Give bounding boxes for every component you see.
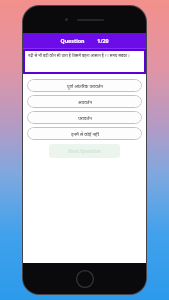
staticText: परावर्तन	[78, 115, 92, 121]
button[interactable]: Question	[23, 33, 146, 48]
staticText: Question	[60, 37, 85, 44]
staticText: पूर्ण आंतरिक परावर्तन	[67, 83, 103, 89]
button[interactable]: Next Question	[49, 144, 120, 158]
button[interactable]: परावर्तन	[27, 111, 142, 124]
button[interactable]: इनमें से कोई नहीं	[27, 127, 142, 140]
staticText: 1/20	[97, 37, 109, 44]
button[interactable]: Home	[76, 270, 94, 288]
staticText: अपवर्तन	[78, 99, 92, 105]
button[interactable]: पूर्ण आंतरिक परावर्तन	[27, 79, 142, 92]
button[interactable]: अपवर्तन	[27, 95, 142, 108]
staticText: नदी से भी बड़ी कौन सी धारा है जिसमें बहन…	[28, 53, 130, 58]
staticText: Next Question	[68, 148, 101, 154]
staticText: इनमें से कोई नहीं	[71, 131, 99, 137]
